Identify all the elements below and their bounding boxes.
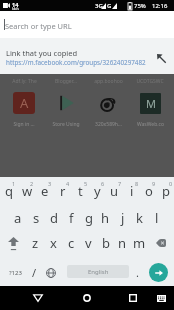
button[interactable]: b: [97, 230, 114, 256]
button[interactable]: n: [114, 230, 131, 256]
button[interactable]: ?123: [4, 259, 26, 286]
button[interactable]: Adf.ly: The: [3, 74, 45, 128]
staticText: M: [146, 96, 156, 111]
staticText: UCDTGSWC: [136, 78, 164, 85]
button[interactable]: 3: [36, 177, 54, 203]
staticText: 9: [152, 180, 156, 187]
button[interactable]: Recent apps: [118, 286, 148, 310]
button[interactable]: Hide keyboard: [152, 286, 171, 310]
button[interactable]: m: [131, 230, 148, 256]
staticText: Search or type URL: [5, 21, 72, 31]
button[interactable]: a: [9, 204, 27, 230]
staticText: 4: [66, 180, 70, 187]
staticText: https://m.facebook.com/groups/3262402974…: [6, 58, 146, 67]
button[interactable]: c: [62, 230, 80, 256]
staticText: l: [155, 209, 159, 227]
button[interactable]: Go: [149, 263, 168, 282]
staticText: 75%: [134, 2, 146, 10]
staticText: s: [33, 209, 40, 227]
button[interactable]: f: [63, 204, 80, 230]
staticText: /: [32, 265, 37, 280]
staticText: c: [68, 234, 75, 252]
staticText: 320x589h...: [95, 121, 122, 128]
button[interactable]: Back: [23, 286, 53, 310]
staticText: Sign in ...: [13, 121, 35, 128]
staticText: k: [136, 209, 143, 227]
staticText: .: [136, 265, 139, 280]
staticText: g: [85, 209, 93, 227]
staticText: Adf.ly: The: [12, 78, 37, 85]
staticText: G: [107, 2, 112, 10]
staticText: A: [20, 94, 29, 112]
button[interactable]: h: [97, 204, 114, 230]
staticText: f: [69, 209, 74, 227]
staticText: i: [130, 182, 134, 200]
button[interactable]: Link that you copied: [0, 38, 174, 74]
button[interactable]: d: [45, 204, 63, 230]
button[interactable]: Change language: [43, 259, 59, 286]
button[interactable]: x: [44, 230, 62, 256]
button[interactable]: v: [80, 230, 97, 256]
button[interactable]: Home: [72, 286, 102, 310]
staticText: h: [101, 209, 110, 227]
button[interactable]: Shift: [0, 230, 26, 256]
button[interactable]: UCDTGSWC: [129, 74, 171, 128]
staticText: 12:16: [152, 2, 168, 10]
button[interactable]: z: [26, 230, 44, 256]
staticText: English: [88, 268, 109, 276]
button[interactable]: 0: [157, 177, 174, 203]
staticText: r: [60, 182, 66, 200]
button[interactable]: s: [27, 204, 45, 230]
staticText: u: [110, 182, 119, 200]
button[interactable]: .: [130, 259, 145, 286]
staticText: x: [50, 234, 57, 252]
button[interactable]: g: [80, 204, 97, 230]
button[interactable]: 4: [54, 177, 72, 203]
staticText: v: [85, 234, 92, 252]
staticText: j: [121, 209, 125, 227]
button[interactable]: 7: [106, 177, 123, 203]
button[interactable]: 9: [140, 177, 157, 203]
button[interactable]: Search or type URL: [0, 11, 174, 38]
staticText: y: [94, 182, 101, 200]
staticText: d: [50, 209, 58, 227]
button[interactable]: k: [131, 204, 148, 230]
staticText: p: [162, 182, 170, 200]
staticText: app.boohoo: [94, 78, 123, 85]
staticText: 0: [169, 180, 173, 187]
staticText: 14: [12, 1, 19, 8]
staticText: Link that you copied: [6, 48, 78, 58]
other: Use suggestion: [157, 54, 166, 63]
staticText: e: [41, 182, 49, 200]
button[interactable]: app.boohoo: [87, 74, 129, 128]
button[interactable]: 1: [0, 177, 18, 203]
staticText: w: [22, 182, 33, 200]
button[interactable]: j: [114, 204, 131, 230]
staticText: 7: [118, 180, 122, 187]
staticText: kb/s: [12, 6, 19, 11]
button[interactable]: 5: [72, 177, 89, 203]
staticText: z: [32, 234, 39, 252]
staticText: t: [78, 182, 83, 200]
staticText: 8: [135, 180, 139, 187]
staticText: a: [14, 209, 22, 227]
button[interactable]: Blogger...: [45, 74, 87, 128]
staticText: 2: [30, 180, 34, 187]
button[interactable]: /: [26, 259, 43, 286]
button[interactable]: 8: [123, 177, 140, 203]
staticText: 1: [12, 180, 16, 187]
staticText: Blogger...: [55, 78, 77, 85]
staticText: n: [118, 234, 127, 252]
staticText: WasWeb.co: [137, 121, 164, 128]
staticText: m: [133, 234, 146, 252]
staticText: b: [102, 234, 110, 252]
staticText: Store Using: [52, 121, 80, 128]
button[interactable]: Backspace: [148, 230, 174, 256]
button[interactable]: 6: [89, 177, 106, 203]
staticText: 3: [48, 180, 52, 187]
staticText: 5: [84, 180, 88, 187]
button[interactable]: l: [148, 204, 165, 230]
button[interactable]: English: [67, 265, 129, 278]
staticText: 3G: [95, 2, 103, 10]
button[interactable]: 2: [18, 177, 36, 203]
